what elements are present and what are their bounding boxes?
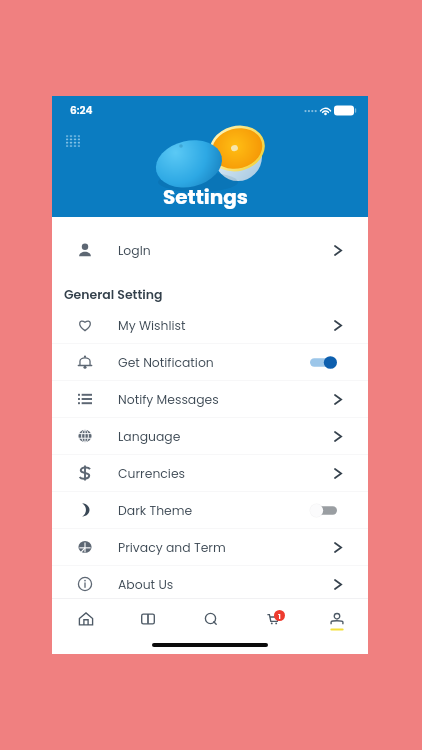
staticText: Currencies — [118, 465, 186, 482]
staticText: Notify Messages — [118, 391, 219, 408]
button[interactable]: Catalog — [117, 599, 179, 638]
staticText: Language — [118, 428, 181, 445]
button[interactable]: Search — [179, 599, 242, 638]
button[interactable]: Get Notification — [52, 344, 368, 380]
staticText: About Us — [118, 576, 174, 593]
button[interactable]: Home — [55, 599, 117, 638]
staticText: Dark Theme — [118, 502, 193, 519]
button[interactable]: Menu — [62, 130, 84, 152]
staticText: LogIn — [118, 242, 151, 259]
staticText: General Setting — [64, 286, 163, 303]
staticText: Privacy and Term — [118, 539, 226, 556]
staticText: My Wishlist — [118, 317, 186, 334]
button[interactable]: Currencies — [52, 455, 368, 491]
staticText: 1 — [278, 611, 281, 621]
button[interactable]: Notify Messages — [52, 381, 368, 417]
button[interactable]: My Wishlist — [52, 307, 368, 343]
button[interactable]: Dark Theme — [52, 492, 368, 528]
staticText: Settings — [163, 183, 248, 211]
button[interactable]: Cart — [242, 599, 305, 638]
button[interactable]: About Us — [52, 566, 368, 602]
button[interactable]: LogIn — [52, 232, 368, 268]
staticText: Get Notification — [118, 354, 214, 371]
button[interactable]: Profile — [305, 599, 368, 638]
staticText: 6:24 — [70, 103, 93, 118]
button[interactable]: Privacy and Term — [52, 529, 368, 565]
button[interactable]: Language — [52, 418, 368, 454]
